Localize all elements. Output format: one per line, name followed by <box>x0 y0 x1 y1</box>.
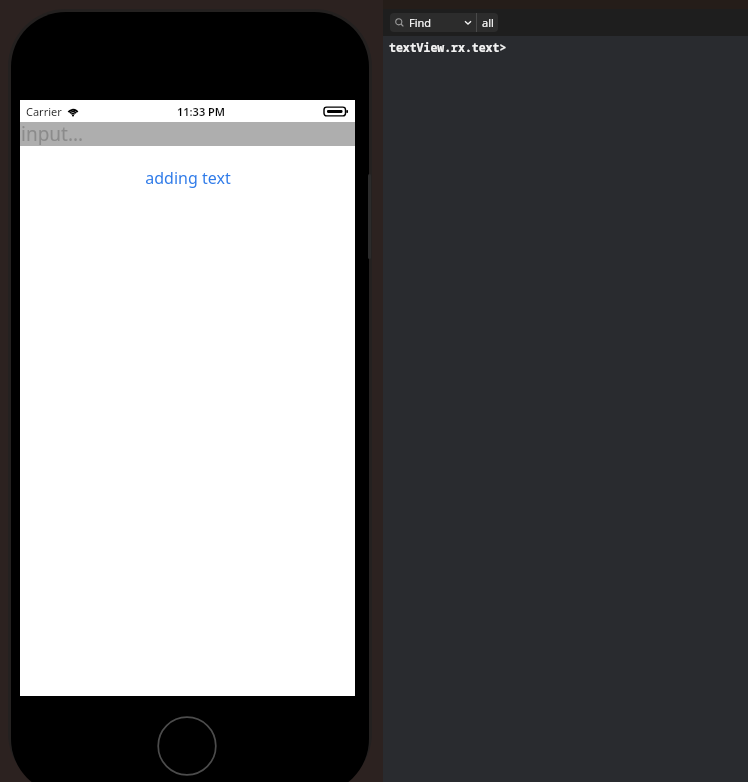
staticText: 11:33 PM <box>177 104 226 119</box>
button[interactable]: Search <box>390 13 498 32</box>
other: Search scope options <box>464 20 472 25</box>
button[interactable]: adding text <box>141 165 235 191</box>
button[interactable]: input... <box>20 122 355 146</box>
button[interactable]: Home <box>157 716 217 776</box>
staticText: textView.rx.text> <box>389 40 507 56</box>
staticText: all <box>482 15 494 30</box>
other: Search <box>395 18 404 27</box>
staticText: input... <box>21 121 84 145</box>
staticText: Carrier <box>26 104 62 119</box>
staticText: Find <box>409 15 432 30</box>
staticText: adding text <box>145 167 231 189</box>
